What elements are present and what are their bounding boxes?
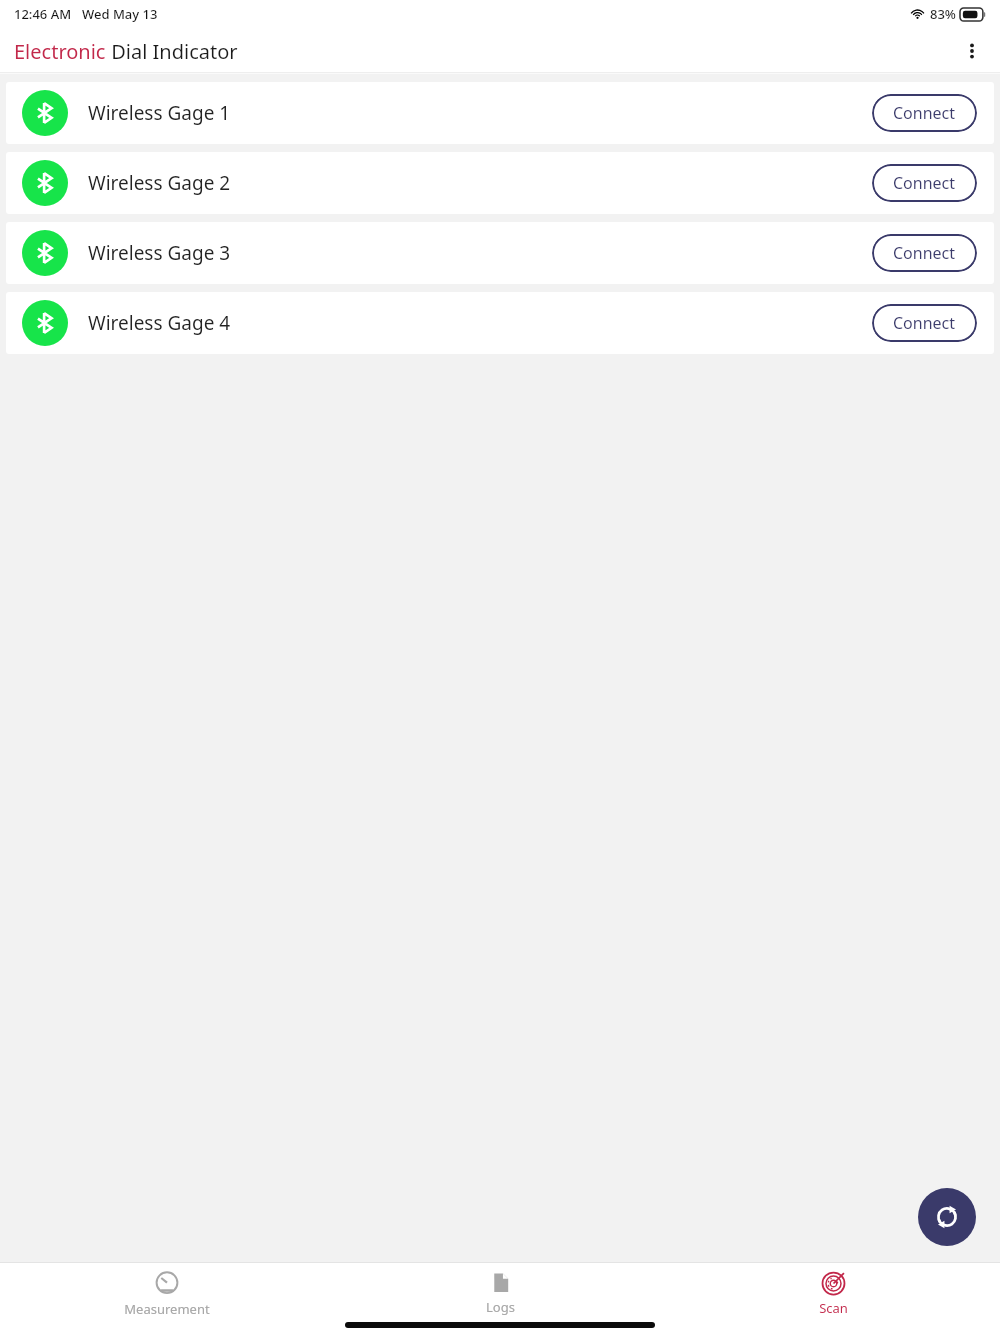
button[interactable]: Wireless Gage 4 <box>6 292 994 354</box>
button[interactable]: Connect <box>872 94 977 132</box>
staticText: Connect <box>893 102 956 124</box>
button[interactable]: Logs <box>334 1263 667 1316</box>
button[interactable]: Wireless Gage 1 <box>6 82 994 144</box>
button[interactable]: Connect <box>872 234 977 272</box>
staticText: 83% <box>930 5 956 23</box>
staticText: Measurement <box>124 1300 210 1316</box>
staticText: Connect <box>893 242 956 264</box>
staticText: Dial Indicator <box>106 38 238 65</box>
button[interactable]: Connect <box>872 164 977 202</box>
staticText: Wireless Gage 1 <box>88 100 231 126</box>
button[interactable]: Refresh scan <box>918 1188 976 1246</box>
staticText: Wireless Gage 3 <box>88 240 231 266</box>
button[interactable]: Wireless Gage 2 <box>6 152 994 214</box>
staticText: Logs <box>486 1298 515 1316</box>
button[interactable]: Measurement <box>0 1263 334 1316</box>
staticText: Connect <box>893 312 956 334</box>
button[interactable]: More options <box>952 31 992 71</box>
staticText: Wed May 13 <box>82 5 158 23</box>
staticText: 12:46 AM <box>14 5 72 23</box>
button[interactable]: Wireless Gage 3 <box>6 222 994 284</box>
staticText: Connect <box>893 172 956 194</box>
button[interactable]: Connect <box>872 304 977 342</box>
staticText: Wireless Gage 2 <box>88 170 231 196</box>
staticText: Scan <box>819 1299 848 1316</box>
staticText: Electronic <box>14 38 106 65</box>
staticText: Wireless Gage 4 <box>88 310 231 336</box>
button[interactable]: Scan <box>667 1263 1000 1316</box>
